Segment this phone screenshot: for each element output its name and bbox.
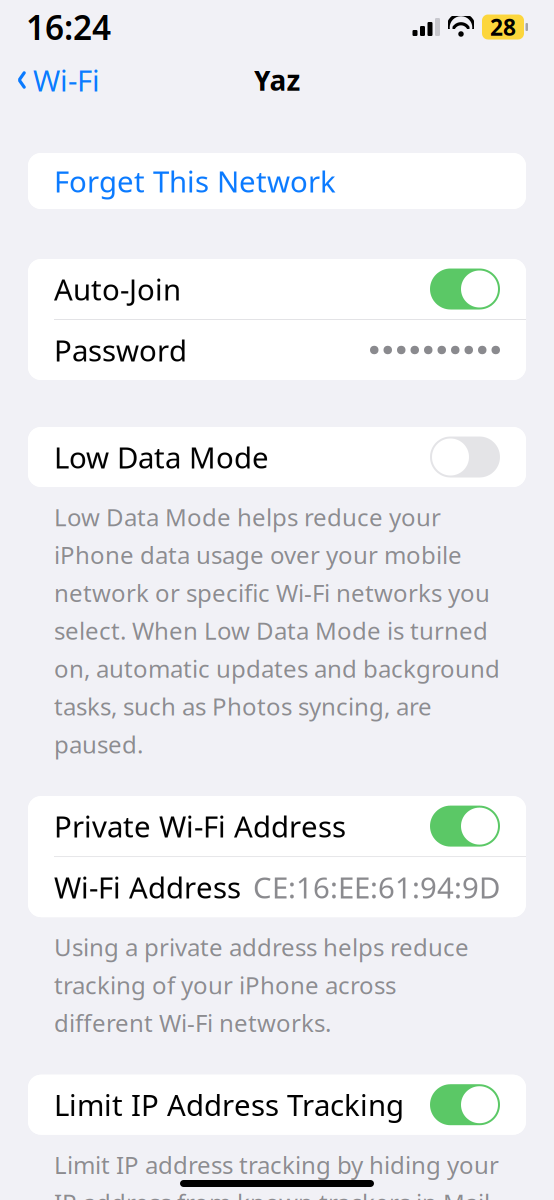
staticText: Wi-Fi Address [54, 868, 241, 907]
staticText: Auto-Join [54, 269, 181, 308]
button[interactable]: Password [28, 320, 526, 380]
staticText: CE:16:EE:61:94:9D [253, 868, 500, 907]
staticText: 28 [490, 12, 516, 42]
staticText: 16:24 [26, 5, 111, 49]
button[interactable]: Wi-Fi [0, 58, 110, 102]
button[interactable]: Limit IP Address Tracking [28, 1075, 526, 1135]
staticText: Forget This Network [54, 161, 336, 200]
staticText: Low Data Mode [54, 437, 269, 476]
staticText: Limit IP Address Tracking [54, 1085, 404, 1124]
staticText: Private Wi-Fi Address [54, 807, 346, 846]
staticText: Low Data Mode helps reduce your iPhone d… [54, 501, 500, 760]
button[interactable]: Low Data Mode [28, 427, 526, 487]
staticText: Limit IP address tracking by hiding your… [54, 1149, 499, 1200]
staticText: Password [54, 330, 187, 369]
staticText: Using a private address helps reduce tra… [54, 931, 469, 1039]
button[interactable]: Auto-Join [28, 259, 526, 319]
button[interactable]: Wi-Fi Address [28, 857, 526, 917]
button[interactable]: Forget This Network [28, 153, 526, 209]
staticText: Wi-Fi [33, 60, 100, 99]
button[interactable]: Private Wi-Fi Address [28, 796, 526, 856]
staticText: Yaz [253, 61, 300, 99]
